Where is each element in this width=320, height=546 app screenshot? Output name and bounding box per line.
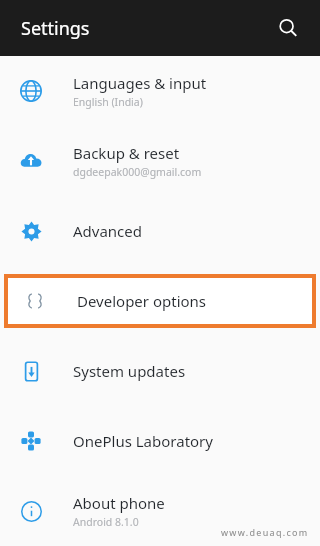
- button[interactable]: OnePlus Laboratory: [0, 406, 320, 476]
- staticText: About phone: [73, 493, 165, 513]
- staticText: Settings: [21, 16, 90, 41]
- button[interactable]: Backup & reset: [0, 126, 320, 196]
- button[interactable]: Developer options: [4, 274, 316, 328]
- staticText: Languages & input: [73, 73, 207, 93]
- button[interactable]: Search: [268, 8, 308, 48]
- staticText: OnePlus Laboratory: [73, 431, 213, 451]
- staticText: Developer options: [77, 291, 207, 311]
- button[interactable]: Advanced: [0, 196, 320, 266]
- staticText: Advanced: [73, 221, 143, 241]
- button[interactable]: System updates: [0, 336, 320, 406]
- staticText: dgdeepak000@gmail.com: [73, 165, 202, 179]
- staticText: Android 8.1.0: [73, 515, 139, 529]
- staticText: www.deuaq.com: [221, 526, 309, 538]
- button[interactable]: About phone: [0, 476, 320, 546]
- staticText: System updates: [73, 361, 186, 381]
- staticText: Backup & reset: [73, 143, 180, 163]
- staticText: English (India): [73, 95, 143, 109]
- button[interactable]: Languages & input: [0, 56, 320, 126]
